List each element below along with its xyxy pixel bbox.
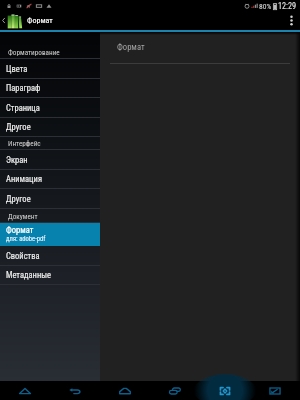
button[interactable]: Параграф	[0, 79, 100, 98]
staticText: Экран	[6, 155, 28, 165]
staticText: Формат	[117, 42, 145, 52]
button[interactable]: Экран	[0, 150, 100, 170]
staticText: для: adobe-pdf	[6, 235, 46, 243]
button[interactable]: Restore window	[250, 381, 300, 400]
staticText: Формат	[6, 225, 34, 235]
button[interactable]: Recent apps	[150, 381, 200, 400]
staticText: Свойства	[6, 251, 40, 261]
staticText: Интерфейс	[8, 139, 41, 147]
staticText: Другое	[6, 194, 31, 204]
staticText: Документ	[8, 212, 38, 220]
staticText: 12:29	[278, 1, 297, 11]
staticText: Цвета	[6, 64, 28, 74]
button[interactable]: Цвета	[0, 59, 100, 79]
button[interactable]: Другое	[0, 189, 100, 209]
staticText: Метаданные	[6, 270, 52, 280]
button[interactable]: Формат	[0, 223, 100, 246]
staticText: Форматирование	[8, 48, 60, 56]
button[interactable]: Страница	[0, 98, 100, 118]
button[interactable]: Navigate up	[0, 11, 53, 30]
button[interactable]: Метаданные	[0, 266, 100, 285]
staticText: 80%	[259, 2, 272, 11]
button[interactable]: Анимация	[0, 170, 100, 189]
button[interactable]: Свойства	[0, 246, 100, 266]
button[interactable]: Navigate up	[0, 381, 50, 400]
button[interactable]: Home	[100, 381, 150, 400]
staticText: Формат	[27, 16, 53, 25]
button[interactable]: Fullscreen	[200, 381, 250, 400]
staticText: Страница	[6, 103, 40, 113]
staticText: Анимация	[6, 174, 43, 184]
staticText: Параграф	[6, 83, 41, 93]
button[interactable]: Back	[50, 381, 100, 400]
staticText: Другое	[6, 122, 31, 132]
button[interactable]: More options	[282, 11, 300, 30]
button[interactable]: Другое	[0, 118, 100, 137]
